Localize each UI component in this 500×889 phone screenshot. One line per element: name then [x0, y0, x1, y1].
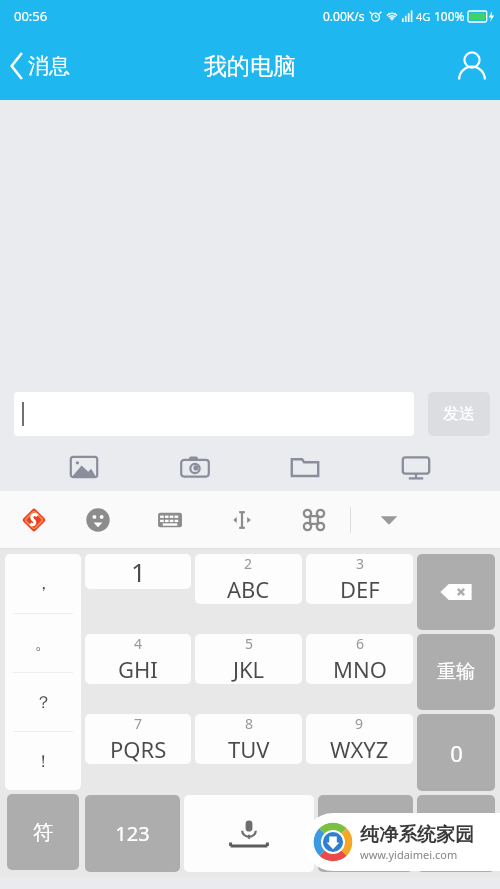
staticText: 4: [134, 634, 143, 653]
button[interactable]: Take photo: [169, 443, 221, 491]
staticText: 4G: [416, 9, 431, 24]
button[interactable]: 符: [7, 794, 79, 870]
button[interactable]: Send file: [279, 443, 331, 491]
button[interactable]: Remote desktop: [390, 443, 442, 491]
staticText: 123: [115, 820, 150, 847]
button[interactable]: Sogou input: [6, 491, 62, 549]
staticText: www.yidaimei.com: [360, 847, 458, 862]
staticText: GHI: [118, 654, 158, 684]
staticText: 发送: [443, 404, 475, 424]
button[interactable]: Enter: [417, 795, 495, 872]
button[interactable]: 7: [85, 714, 191, 764]
button[interactable]: Keyboard layout: [134, 491, 206, 549]
staticText: 消息: [28, 53, 70, 79]
button[interactable]: 1: [85, 554, 191, 589]
staticText: DEF: [340, 574, 380, 604]
staticText: 0: [450, 738, 463, 768]
button[interactable]: Shortcuts: [278, 491, 350, 549]
staticText: PQRS: [110, 734, 167, 764]
button[interactable]: 中/英: [318, 795, 413, 872]
button[interactable]: 4: [85, 634, 191, 684]
button[interactable]: 0: [417, 714, 495, 791]
button[interactable]: Hide keyboard: [351, 491, 427, 549]
staticText: 中/英: [345, 822, 386, 845]
button[interactable]: 123: [85, 795, 180, 872]
button[interactable]: Contact profile: [444, 43, 500, 89]
button[interactable]: ，: [5, 554, 81, 613]
staticText: ABC: [227, 574, 270, 604]
button[interactable]: Emoji: [62, 491, 134, 549]
button[interactable]: Send image: [58, 443, 110, 491]
button[interactable]: Space, voice input: [184, 795, 314, 872]
button[interactable]: 。: [5, 614, 81, 672]
staticText: 7: [134, 714, 143, 733]
button[interactable]: 发送: [428, 392, 490, 436]
staticText: ？: [35, 692, 52, 713]
staticText: 符: [33, 820, 53, 845]
staticText: MNO: [333, 654, 387, 684]
staticText: TUV: [228, 734, 270, 764]
button[interactable]: 重输: [417, 634, 495, 710]
button[interactable]: 消息: [0, 47, 82, 85]
staticText: 重输: [437, 660, 475, 684]
button[interactable]: ？: [5, 673, 81, 731]
staticText: 我的电脑: [204, 52, 296, 81]
button[interactable]: 8: [195, 714, 302, 764]
staticText: 0.00K/s: [323, 8, 365, 24]
staticText: 9: [355, 714, 364, 733]
button[interactable]: 5: [195, 634, 302, 684]
staticText: 100%: [434, 8, 465, 24]
staticText: JKL: [233, 654, 265, 684]
staticText: WXYZ: [330, 734, 389, 764]
button[interactable]: ！: [5, 732, 81, 790]
button[interactable]: Backspace: [417, 554, 495, 630]
button[interactable]: 3: [306, 554, 413, 604]
staticText: 纯净系统家园: [360, 823, 474, 847]
staticText: 3: [356, 554, 365, 573]
button[interactable]: 6: [306, 634, 413, 684]
button[interactable]: [14, 392, 414, 436]
button[interactable]: 2: [195, 554, 302, 604]
staticText: 5: [245, 634, 254, 653]
staticText: 2: [244, 554, 253, 573]
staticText: ，: [35, 573, 52, 594]
staticText: 8: [245, 714, 254, 733]
staticText: 00:56: [14, 7, 48, 25]
staticText: ！: [35, 751, 52, 772]
staticText: 。: [35, 633, 52, 654]
button[interactable]: Move cursor: [206, 491, 278, 549]
staticText: 6: [356, 634, 365, 653]
staticText: 1: [131, 554, 146, 589]
button[interactable]: 9: [306, 714, 413, 764]
